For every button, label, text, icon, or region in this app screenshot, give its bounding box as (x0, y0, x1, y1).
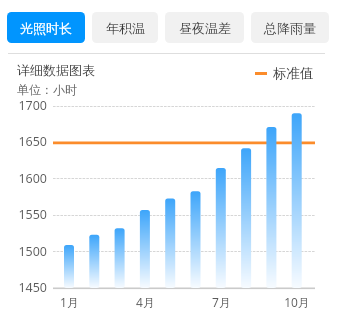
staticText: 详细数据图表 (17, 62, 95, 78)
staticText: 年积温 (106, 20, 145, 36)
staticText: 4月 (136, 294, 155, 310)
staticText: 7月 (212, 294, 231, 310)
staticText: 标准值 (273, 65, 314, 82)
staticText: 昼夜温差 (179, 20, 231, 36)
staticText: 1700 (18, 97, 47, 114)
staticText: 10月 (284, 294, 310, 310)
staticText: 1600 (18, 170, 47, 187)
staticText: 1500 (18, 243, 47, 260)
staticText: 1450 (18, 279, 47, 296)
button[interactable]: 年积温 (92, 12, 158, 43)
staticText: 1月 (60, 294, 79, 310)
button[interactable]: 总降雨量 (251, 12, 329, 43)
staticText: 总降雨量 (264, 20, 316, 36)
staticText: 1650 (18, 133, 47, 150)
staticText: 1550 (18, 206, 47, 223)
button[interactable]: 昼夜温差 (165, 12, 244, 43)
button[interactable]: 光照时长 (7, 12, 85, 43)
staticText: 单位：小时 (17, 82, 77, 97)
staticText: 光照时长 (20, 20, 72, 36)
